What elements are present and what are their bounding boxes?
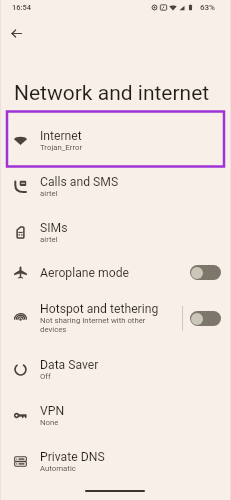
staticText: Aeroplane mode (40, 266, 130, 280)
button[interactable]: Aeroplane mode (183, 255, 231, 290)
staticText: VPN (40, 404, 65, 418)
staticText: 16:54 (12, 3, 32, 12)
staticText: airtel (40, 235, 58, 244)
staticText: airtel (40, 189, 58, 198)
button[interactable]: Back (6, 23, 26, 43)
button[interactable]: Calls and SMS (0, 163, 231, 209)
button[interactable]: Internet (0, 117, 231, 163)
staticText: Hotspot and tethering (40, 302, 159, 316)
button[interactable]: VPN (0, 392, 231, 438)
staticText: Data Saver (40, 358, 99, 372)
button[interactable]: SIMs (0, 209, 231, 255)
staticText: Trojan_Error (40, 143, 83, 152)
staticText: 63% (200, 3, 215, 12)
button[interactable]: Hotspot and tethering (0, 290, 182, 346)
staticText: Not sharing Internet with other devices (40, 316, 146, 334)
staticText: Internet (40, 129, 82, 143)
button[interactable]: Private DNS (0, 438, 231, 484)
staticText: Calls and SMS (40, 175, 119, 189)
button[interactable]: Data Saver (0, 346, 231, 392)
button[interactable]: Hotspot and tethering (183, 290, 231, 346)
staticText: Automatic (40, 464, 76, 473)
staticText: Network and internet (14, 81, 210, 106)
button[interactable]: Aeroplane mode (0, 255, 183, 290)
staticText: None (40, 418, 59, 427)
staticText: Off (40, 372, 51, 381)
staticText: SIMs (40, 221, 68, 235)
staticText: Private DNS (40, 450, 105, 464)
